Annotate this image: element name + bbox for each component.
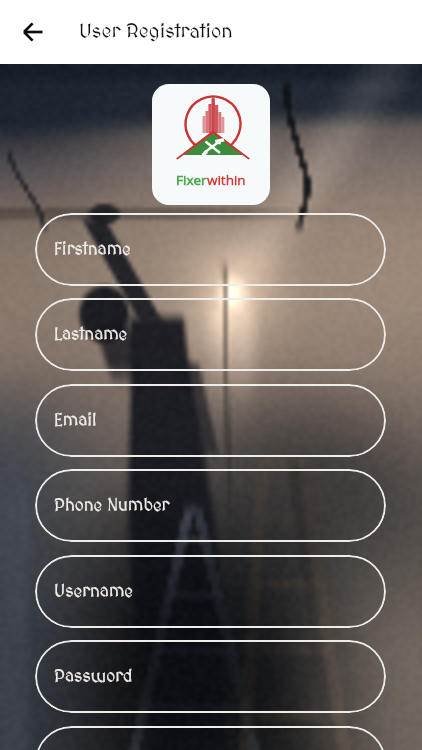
button[interactable]: Password — [35, 640, 386, 713]
staticText: Firstname — [54, 240, 131, 259]
button[interactable]: Lastname — [35, 298, 386, 371]
button[interactable]: Back — [22, 10, 66, 54]
staticText: Phone Number — [54, 496, 170, 515]
button[interactable]: Firstname — [35, 213, 386, 286]
staticText: Username — [54, 582, 133, 601]
staticText: within — [207, 171, 246, 189]
staticText: Lastname — [54, 325, 128, 344]
button[interactable]: Email — [35, 384, 386, 457]
staticText: Email — [54, 411, 97, 430]
staticText: Password — [54, 667, 133, 686]
button[interactable]: Confirm Password — [35, 726, 386, 750]
staticText: User Registration — [79, 21, 233, 43]
button[interactable]: Username — [35, 555, 386, 628]
staticText: Fixer — [176, 171, 207, 189]
button[interactable]: Phone Number — [35, 469, 386, 542]
